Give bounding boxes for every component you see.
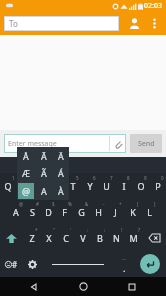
staticText: 9 [144, 175, 147, 181]
staticText: T [70, 180, 76, 192]
button[interactable]: Y [81, 173, 98, 199]
staticText: S [30, 206, 35, 218]
button[interactable]: E [32, 173, 48, 199]
button[interactable]: Á [53, 165, 68, 181]
button[interactable]: Attach [110, 136, 126, 152]
staticText: Y [87, 180, 93, 192]
staticText: 8 [127, 175, 130, 181]
button[interactable]: Send [130, 134, 162, 153]
button[interactable]: Q [0, 173, 16, 199]
button[interactable]: @ [18, 183, 34, 199]
staticText: ! [121, 227, 123, 233]
button[interactable]: Home [68, 277, 98, 296]
staticText: I [122, 180, 126, 192]
button[interactable]: Å [18, 148, 34, 163]
staticText: 7 [110, 175, 113, 181]
staticText: K [130, 206, 136, 218]
staticText: Ä [58, 150, 64, 162]
button[interactable]: M [125, 225, 142, 251]
button[interactable]: T [64, 173, 81, 199]
button[interactable]: A [8, 199, 24, 225]
staticText: ; [104, 227, 106, 233]
button[interactable]: I [115, 173, 132, 199]
button[interactable]: O [132, 173, 149, 199]
staticText: Send [138, 139, 155, 149]
button[interactable]: Enter [140, 254, 160, 274]
button[interactable]: ... [114, 251, 134, 277]
staticText: W [20, 180, 29, 192]
staticText: " [53, 227, 55, 233]
staticText: Æ [22, 167, 30, 179]
staticText: . [123, 262, 126, 274]
staticText: : [87, 227, 89, 233]
button[interactable]: To [4, 16, 119, 31]
staticText: ( [137, 201, 139, 207]
button[interactable]: Ã [36, 165, 51, 181]
staticText: A [13, 206, 19, 218]
button[interactable]: G [73, 199, 90, 225]
button[interactable]: Enter message [4, 134, 126, 153]
staticText: Å [23, 150, 29, 162]
button[interactable]: Æ [18, 165, 34, 181]
staticText: X [46, 232, 52, 244]
button[interactable]: R [48, 173, 64, 199]
button[interactable]: Space [42, 251, 114, 277]
button[interactable]: Settings [22, 251, 42, 277]
button[interactable]: P [149, 173, 166, 199]
button[interactable]: Z [23, 225, 40, 251]
button[interactable]: Backspace [142, 225, 166, 251]
staticText: Q [4, 180, 12, 192]
staticText: À [58, 185, 64, 197]
button[interactable]: C [57, 225, 74, 251]
button[interactable]: V [74, 225, 91, 251]
button[interactable]: Recent apps [117, 277, 147, 296]
button[interactable]: N [108, 225, 125, 251]
staticText: 2 [28, 175, 31, 181]
staticText: Enter message [8, 139, 57, 149]
button[interactable]: B [91, 225, 108, 251]
staticText: F [62, 206, 67, 218]
staticText: Ā [41, 150, 47, 162]
button[interactable]: Ä [53, 148, 68, 163]
button[interactable]: H [90, 199, 107, 225]
button[interactable]: Symbols and emoji [0, 251, 22, 277]
staticText: H [95, 206, 102, 218]
button[interactable]: X [40, 225, 57, 251]
button[interactable]: Back [19, 277, 49, 296]
staticText: L [147, 206, 152, 218]
staticText: O [137, 180, 145, 192]
staticText: $ [52, 201, 55, 207]
button[interactable]: L [141, 199, 158, 225]
staticText: 3 [44, 175, 47, 181]
staticText: Ã [41, 167, 47, 179]
button[interactable]: U [98, 173, 115, 199]
button[interactable]: K [124, 199, 141, 225]
button[interactable]: Add contact [125, 14, 143, 32]
staticText: # [36, 201, 39, 207]
staticText: N [113, 232, 120, 244]
staticText: A [41, 185, 47, 197]
button[interactable]: W [16, 173, 32, 199]
button[interactable]: F [56, 199, 73, 225]
button[interactable]: Ā [36, 148, 51, 163]
button[interactable]: Shift [0, 225, 23, 251]
staticText: ) [154, 201, 156, 207]
staticText: & [85, 201, 89, 207]
staticText: C [63, 232, 69, 244]
staticText: * [35, 227, 38, 233]
button[interactable]: D [40, 199, 56, 225]
staticText: + [119, 201, 122, 207]
staticText: B [97, 232, 103, 244]
staticText: 5 [76, 175, 79, 181]
staticText: 4 [60, 175, 63, 181]
staticText: ? [138, 227, 140, 233]
staticText: P [155, 180, 161, 192]
button[interactable]: J [107, 199, 124, 225]
button[interactable]: S [24, 199, 40, 225]
button[interactable]: À [53, 183, 68, 199]
button[interactable]: A [36, 183, 51, 199]
staticText: D [45, 206, 52, 218]
button[interactable]: More options [146, 15, 162, 31]
staticText: @ [19, 201, 24, 207]
